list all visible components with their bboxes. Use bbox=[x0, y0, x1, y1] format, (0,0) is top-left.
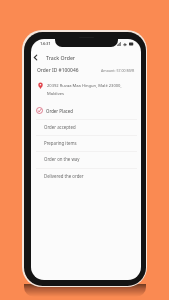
button[interactable]: Order accepted bbox=[31, 119, 141, 135]
staticText: Maldives bbox=[47, 91, 64, 97]
staticText: Track Order bbox=[46, 54, 76, 61]
button[interactable]: Delivered the order bbox=[31, 168, 141, 184]
staticText: Order on the way bbox=[44, 156, 80, 162]
staticText: Order Placed bbox=[46, 108, 73, 114]
staticText: Order accepted bbox=[44, 124, 76, 130]
button[interactable]: Order Placed bbox=[31, 103, 141, 119]
staticText: Delivered the order bbox=[44, 173, 84, 179]
staticText: Amount: 57.00 MVR bbox=[101, 68, 135, 73]
staticText: 20392 Ruvaa Maa Hingun, Malé 23000, bbox=[47, 83, 122, 89]
button[interactable]: Back bbox=[31, 51, 40, 63]
button[interactable]: Preparing items bbox=[31, 135, 141, 151]
staticText: Preparing items bbox=[44, 140, 77, 146]
staticText: Order ID #100046 bbox=[37, 67, 79, 74]
button[interactable]: Order on the way bbox=[31, 151, 141, 167]
staticText: 14:31 bbox=[40, 41, 51, 47]
